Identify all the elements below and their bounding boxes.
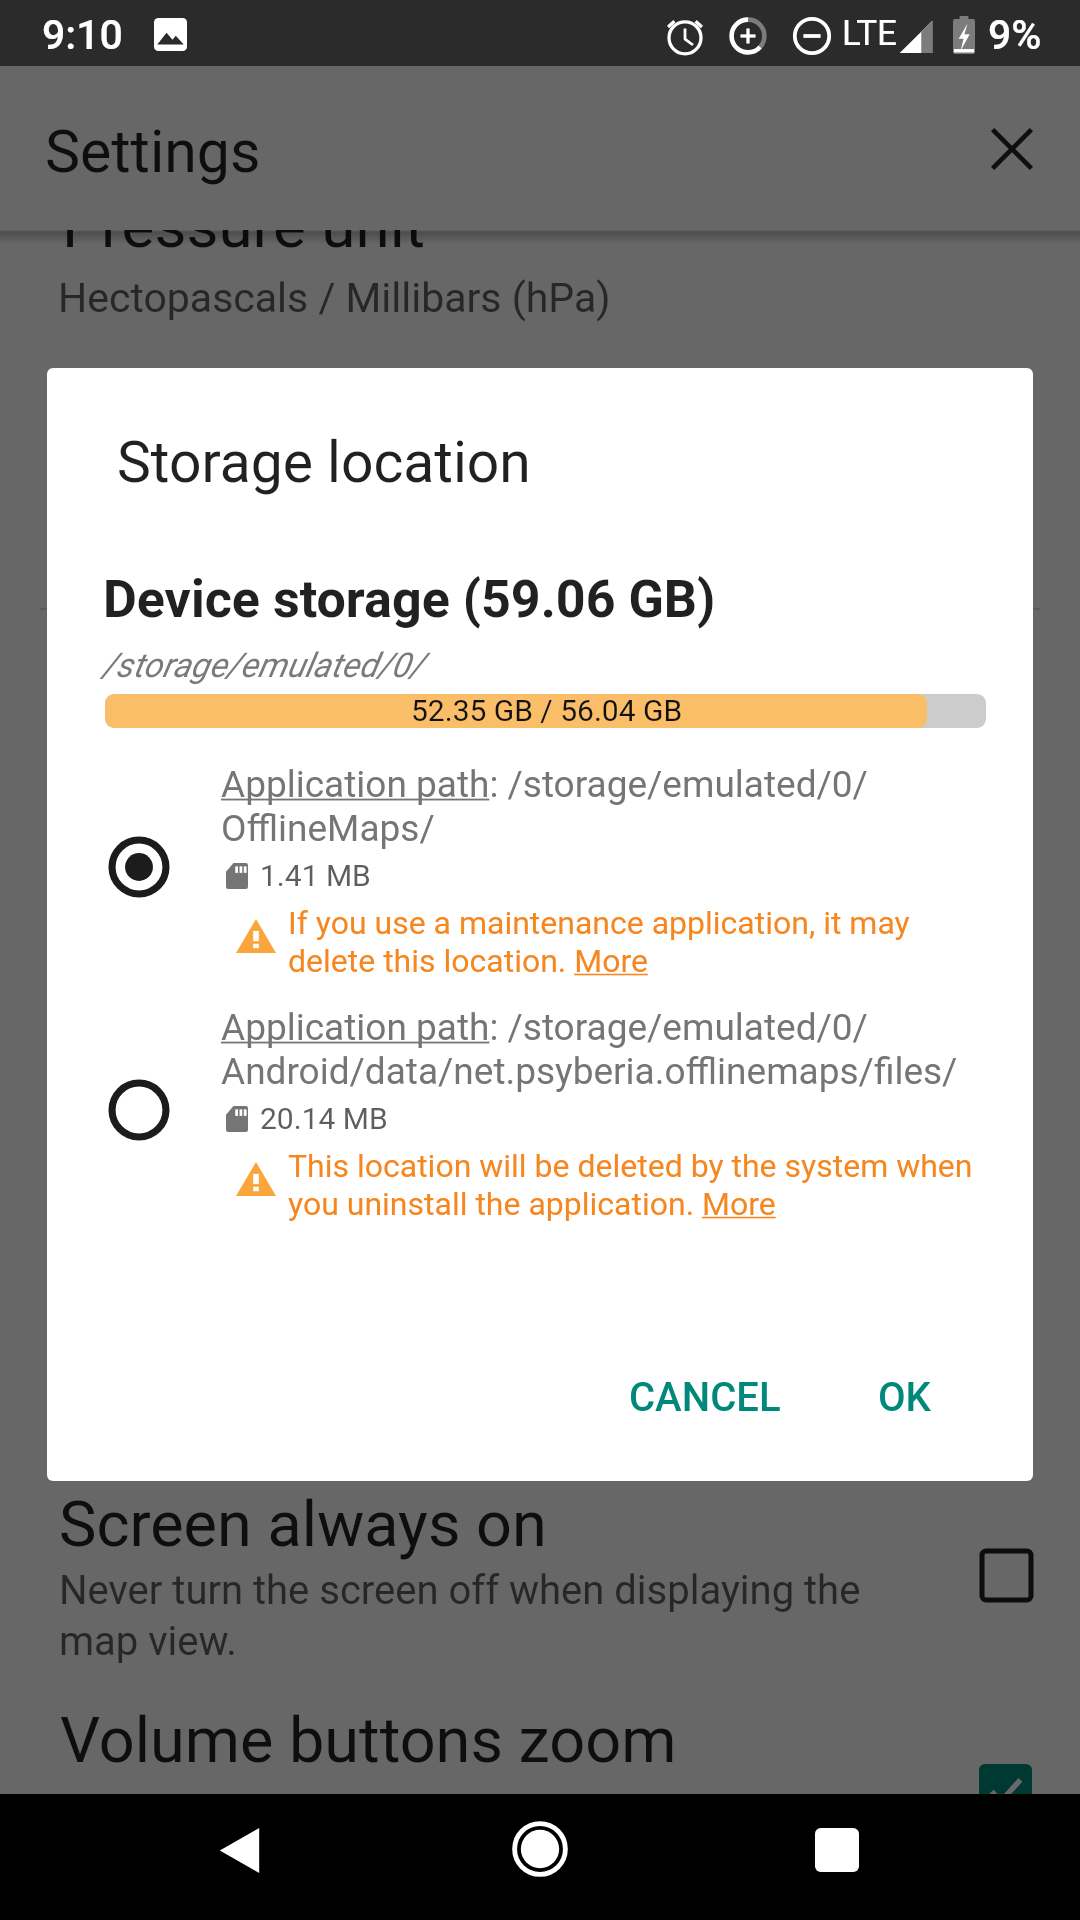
staticText: If you use a maintenance application, it… xyxy=(288,904,910,980)
staticText: This location will be deleted by the sys… xyxy=(288,1147,973,1223)
staticText: Never turn the screen off when displayin… xyxy=(59,1567,861,1664)
staticText: Application path: /storage/emulated/0/ O… xyxy=(221,763,868,850)
button[interactable]: OK xyxy=(845,1344,964,1451)
button[interactable]: Screen always on toggle xyxy=(980,1549,1033,1602)
staticText: Settings xyxy=(45,117,261,186)
staticText: Screen always on xyxy=(59,1488,547,1562)
staticText: Volume buttons zoom xyxy=(60,1704,677,1778)
staticText: 9% xyxy=(988,11,1042,59)
button[interactable]: CANCEL xyxy=(596,1344,814,1451)
staticText: Storage location xyxy=(117,429,531,496)
staticText: 52.35 GB / 56.04 GB xyxy=(411,694,683,727)
staticText: /storage/emulated/0/ xyxy=(102,645,424,685)
staticText: LTE xyxy=(842,13,897,54)
button[interactable]: Recent apps xyxy=(777,1790,897,1910)
button[interactable]: Home xyxy=(480,1789,600,1909)
staticText: Pressure unit xyxy=(62,189,426,262)
button[interactable] xyxy=(47,994,1033,1216)
button[interactable] xyxy=(47,751,1033,973)
staticText: Device storage (59.06 GB) xyxy=(103,569,716,630)
staticText: 20.14 MB xyxy=(260,1101,388,1136)
staticText: OK xyxy=(878,1374,931,1421)
staticText: 9:10 xyxy=(42,11,123,59)
staticText: Application path: /storage/emulated/0/ A… xyxy=(221,1006,958,1093)
button[interactable]: Volume buttons zoom toggle xyxy=(979,1764,1032,1817)
button[interactable]: Back xyxy=(179,1790,299,1910)
button[interactable]: Close xyxy=(964,101,1060,197)
staticText: CANCEL xyxy=(629,1374,781,1421)
staticText: 1.41 MB xyxy=(260,858,371,893)
staticText: Hectopascals / Millibars (hPa) xyxy=(58,274,611,322)
